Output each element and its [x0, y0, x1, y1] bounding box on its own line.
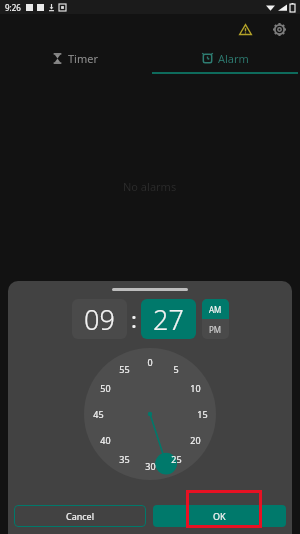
- staticText: 09: [84, 301, 115, 338]
- staticText: 15: [197, 408, 208, 420]
- staticText: 10: [190, 382, 201, 394]
- staticText: 27: [153, 301, 184, 338]
- staticText: 35: [119, 453, 130, 465]
- staticText: PM: [209, 324, 222, 335]
- staticText: 30: [145, 460, 156, 472]
- button[interactable]: Settings: [266, 16, 292, 42]
- button[interactable]: Cancel: [14, 505, 146, 527]
- button[interactable]: Timer: [0, 44, 150, 72]
- staticText: OK: [213, 510, 226, 522]
- button[interactable]: AM: [202, 299, 229, 319]
- staticText: No alarms: [123, 179, 177, 194]
- staticText: Timer: [68, 51, 98, 66]
- staticText: :: [131, 304, 137, 334]
- button[interactable]: Warning: [232, 16, 258, 42]
- button[interactable]: Alarm: [150, 44, 300, 72]
- staticText: 0: [147, 356, 153, 368]
- staticText: 50: [100, 382, 111, 394]
- staticText: 25: [171, 453, 182, 465]
- staticText: Cancel: [66, 510, 95, 522]
- button[interactable]: 09: [72, 299, 127, 339]
- button[interactable]: OK: [153, 505, 286, 527]
- staticText: AM: [209, 304, 222, 315]
- staticText: 9:26: [5, 2, 21, 13]
- staticText: 20: [190, 434, 201, 446]
- button[interactable]: PM: [202, 319, 229, 339]
- staticText: 45: [93, 408, 104, 420]
- staticText: 55: [119, 363, 130, 375]
- button[interactable]: 27: [141, 299, 196, 339]
- staticText: 40: [100, 434, 111, 446]
- staticText: 5: [173, 363, 179, 375]
- staticText: Alarm: [218, 51, 249, 66]
